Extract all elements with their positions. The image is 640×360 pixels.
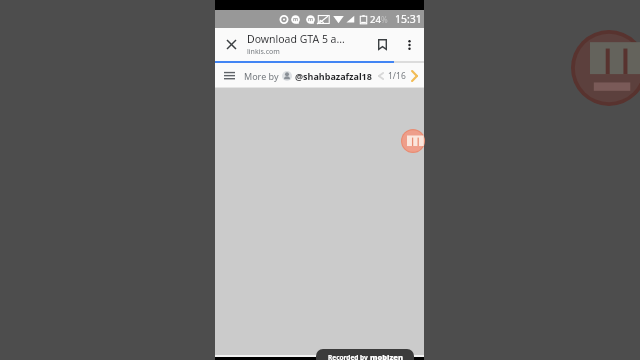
staticText: linkis.com: [247, 47, 280, 57]
staticText: @shahbazafzal18: [295, 70, 372, 82]
button[interactable]: Menu: [215, 63, 244, 88]
button[interactable]: More by: [244, 70, 372, 82]
staticText: 15:31: [395, 12, 422, 26]
button[interactable]: Previous: [374, 63, 388, 88]
button[interactable]: Close: [215, 28, 247, 61]
staticText: More by: [244, 70, 279, 82]
staticText: 24: [370, 13, 381, 26]
button[interactable]: Bookmark: [367, 28, 398, 61]
button[interactable]: Download GTA 5 a…: [247, 28, 367, 61]
staticText: Download GTA 5 a…: [247, 32, 345, 46]
staticText: Recorded by: [328, 353, 370, 360]
staticText: %: [381, 14, 388, 25]
staticText: mobizen: [370, 352, 403, 360]
button[interactable]: More options: [398, 28, 420, 61]
staticText: 1/16: [388, 70, 406, 82]
button[interactable]: Next: [406, 63, 422, 88]
